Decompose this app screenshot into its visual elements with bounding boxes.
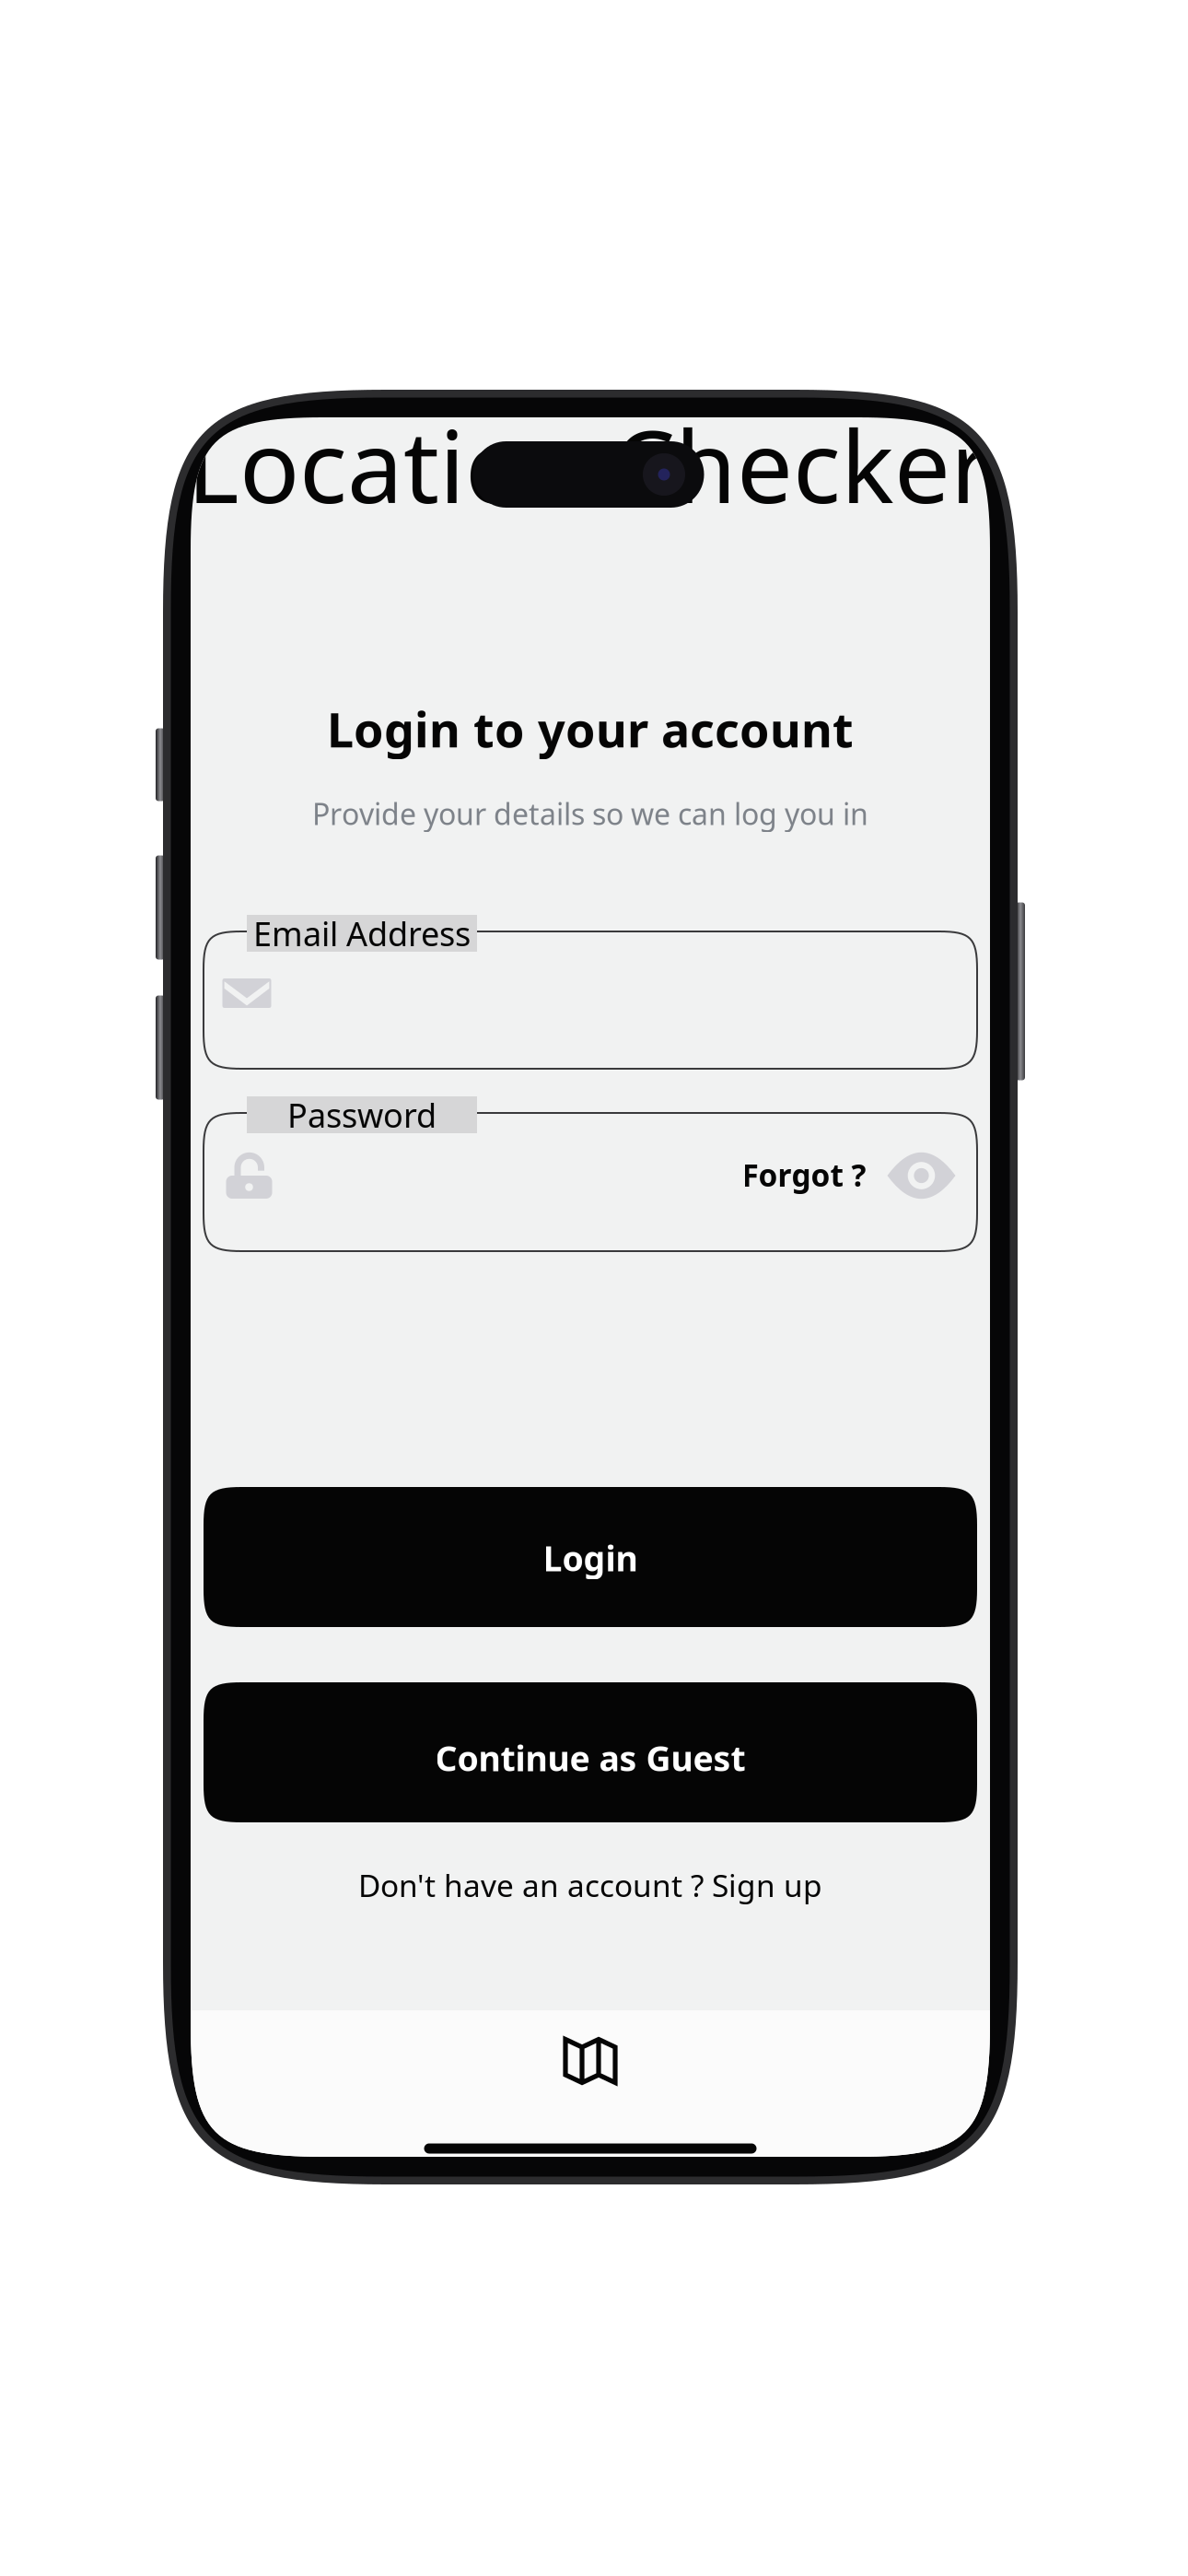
staticText: Password <box>287 1093 437 1137</box>
staticText: Location Checker <box>187 398 992 530</box>
staticText: Don't have an account ? Sign up <box>358 1865 822 1905</box>
button[interactable]: Continue as Guest <box>204 1682 977 1822</box>
staticText: Email Address <box>253 911 471 955</box>
button[interactable]: Login <box>204 1487 977 1627</box>
staticText: Login <box>543 1535 638 1581</box>
staticText: Continue as Guest <box>435 1735 745 1781</box>
staticText: Login to your account <box>327 697 854 761</box>
staticText: Forgot ? <box>742 1154 866 1195</box>
staticText: Provide your details so we can log you i… <box>312 794 868 833</box>
button[interactable]: Don't have an account ? Sign up <box>349 1859 832 1911</box>
button[interactable]: Forgot ? <box>734 1147 874 1203</box>
button[interactable]: Show password <box>887 1151 955 1200</box>
button[interactable]: Map <box>548 2025 633 2097</box>
